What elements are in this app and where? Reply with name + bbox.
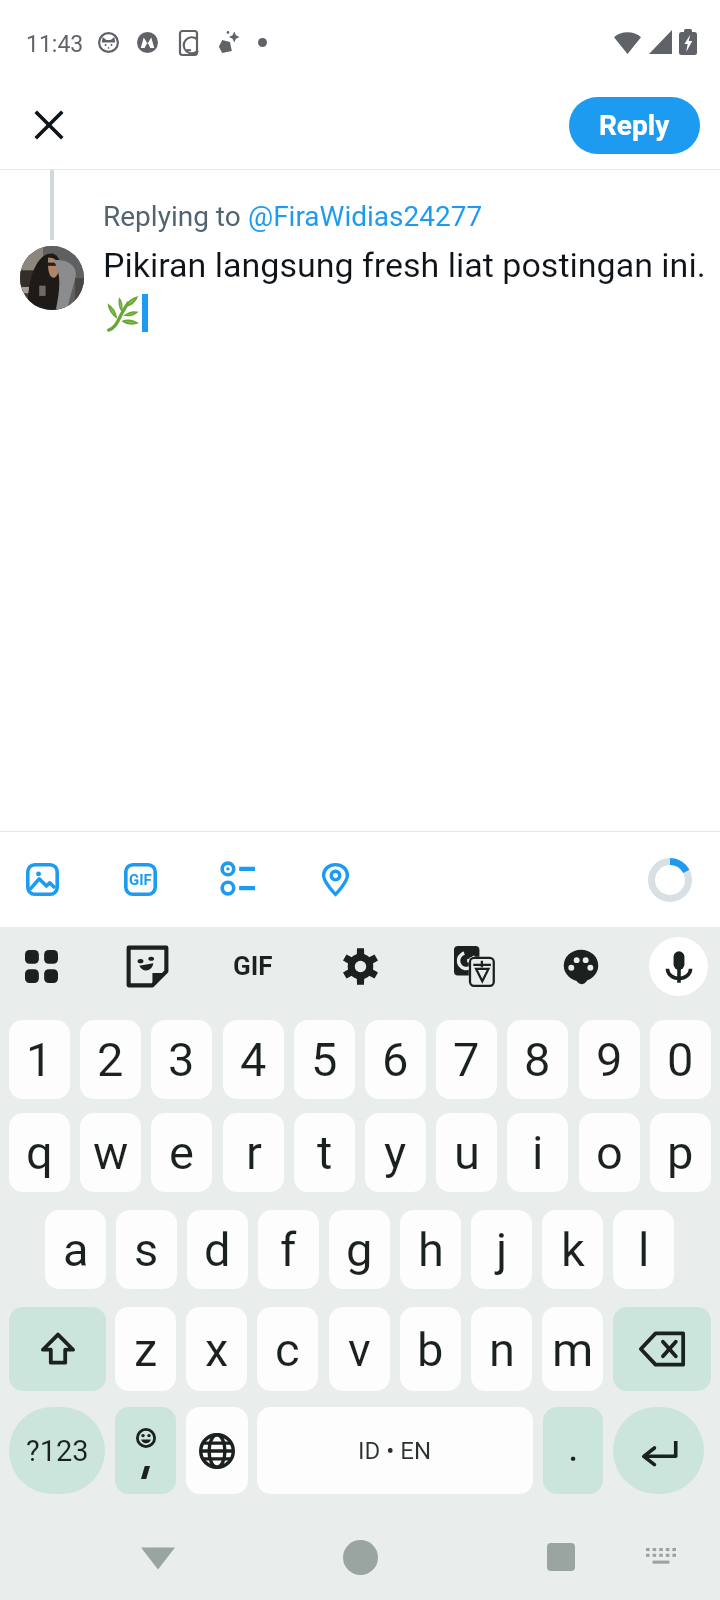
button[interactable]: 0 <box>650 1020 711 1099</box>
button[interactable]: Stickers <box>120 937 174 996</box>
button[interactable]: a <box>45 1210 106 1289</box>
button[interactable]: Theme <box>554 937 608 996</box>
staticText: u <box>454 1125 480 1180</box>
button[interactable]: q <box>9 1113 70 1192</box>
button[interactable]: ?123 <box>9 1407 105 1494</box>
button[interactable]: 1 <box>9 1020 70 1099</box>
button[interactable]: r <box>223 1113 284 1192</box>
staticText: 9 <box>596 1032 623 1087</box>
button[interactable]: 3 <box>151 1020 212 1099</box>
staticText: i <box>532 1125 544 1180</box>
staticText: @FiraWidias24277 <box>248 200 483 233</box>
staticText: x <box>205 1322 229 1377</box>
button[interactable]: 4 <box>223 1020 284 1099</box>
staticText: 4 <box>240 1032 267 1087</box>
button[interactable]: Back <box>131 1530 185 1584</box>
button[interactable]: c <box>257 1307 318 1391</box>
staticText: t <box>317 1125 333 1180</box>
button[interactable]: 2 <box>80 1020 141 1099</box>
staticText: p <box>667 1125 694 1180</box>
button[interactable]: t <box>294 1113 355 1192</box>
staticText: 8 <box>524 1032 551 1087</box>
button[interactable]: u <box>436 1113 497 1192</box>
button[interactable]: Settings <box>333 937 387 996</box>
staticText: GIF <box>233 951 273 981</box>
button[interactable]: 5 <box>294 1020 355 1099</box>
staticText: Pikiran langsung fresh liat postingan in… <box>103 245 706 285</box>
staticText: z <box>134 1322 158 1377</box>
button[interactable]: . <box>543 1407 603 1494</box>
button[interactable]: 9 <box>579 1020 640 1099</box>
staticText: g <box>346 1222 373 1277</box>
staticText: a <box>63 1222 89 1277</box>
button[interactable]: p <box>650 1113 711 1192</box>
button[interactable]: Recent apps <box>534 1530 588 1584</box>
staticText: k <box>561 1222 585 1277</box>
staticText: 6 <box>382 1032 409 1087</box>
button[interactable]: Add poll <box>207 848 269 910</box>
button[interactable]: Backspace <box>613 1307 711 1391</box>
button[interactable]: Translate <box>447 937 501 996</box>
button[interactable]: g <box>329 1210 390 1289</box>
staticText: y <box>384 1125 407 1180</box>
button[interactable]: n <box>471 1307 532 1391</box>
button[interactable]: Close <box>16 92 82 158</box>
staticText: n <box>489 1322 515 1377</box>
button[interactable]: Home <box>333 1530 387 1584</box>
button[interactable]: i <box>507 1113 568 1192</box>
staticText: f <box>280 1222 297 1277</box>
button[interactable]: 6 <box>365 1020 426 1099</box>
staticText: q <box>26 1125 53 1180</box>
button[interactable]: Switch keyboard <box>634 1530 688 1584</box>
staticText: 2 <box>97 1032 124 1087</box>
staticText: 7 <box>453 1032 480 1087</box>
button[interactable]: y <box>365 1113 426 1192</box>
button[interactable]: e <box>151 1113 212 1192</box>
button[interactable]: Enter <box>613 1407 704 1494</box>
staticText: v <box>348 1322 371 1377</box>
button[interactable]: Add location <box>304 848 366 910</box>
button[interactable]: ID • EN <box>257 1407 533 1494</box>
button[interactable]: j <box>471 1210 532 1289</box>
staticText: l <box>638 1222 650 1277</box>
staticText: j <box>496 1222 508 1277</box>
button[interactable]: x <box>186 1307 247 1391</box>
staticText: r <box>246 1125 262 1180</box>
button[interactable]: d <box>187 1210 248 1289</box>
button[interactable]: w <box>80 1113 141 1192</box>
staticText: b <box>417 1322 444 1377</box>
button[interactable]: Shift <box>9 1307 106 1391</box>
button[interactable]: Change language <box>186 1407 248 1494</box>
button[interactable]: v <box>329 1307 390 1391</box>
staticText: s <box>134 1222 159 1277</box>
staticText: 0 <box>667 1032 694 1087</box>
button[interactable]: Emoji <box>115 1407 176 1494</box>
button[interactable]: Apps <box>14 937 68 996</box>
button[interactable]: k <box>542 1210 603 1289</box>
button[interactable]: o <box>579 1113 640 1192</box>
staticText: ID • EN <box>358 1437 432 1465</box>
button[interactable]: Add GIF <box>109 848 171 910</box>
staticText: e <box>169 1125 194 1180</box>
button[interactable]: Add photo <box>11 848 73 910</box>
staticText: 11:43 <box>26 31 84 58</box>
button[interactable]: z <box>115 1307 176 1391</box>
button[interactable]: f <box>258 1210 319 1289</box>
button[interactable]: Voice input <box>649 937 708 996</box>
button[interactable]: m <box>542 1307 603 1391</box>
staticText: . <box>569 1434 578 1468</box>
staticText: GIF <box>129 871 152 889</box>
staticText: c <box>275 1322 300 1377</box>
button[interactable]: l <box>613 1210 674 1289</box>
button[interactable]: h <box>400 1210 461 1289</box>
staticText: ?123 <box>26 1434 89 1468</box>
button[interactable]: s <box>116 1210 177 1289</box>
button[interactable]: GIF <box>226 939 280 993</box>
button[interactable]: 8 <box>507 1020 568 1099</box>
staticText: Reply <box>599 109 670 142</box>
staticText: 1 <box>26 1032 53 1087</box>
button[interactable]: b <box>400 1307 461 1391</box>
button[interactable]: 7 <box>436 1020 497 1099</box>
staticText: w <box>93 1125 129 1180</box>
button[interactable]: Reply <box>569 97 700 154</box>
